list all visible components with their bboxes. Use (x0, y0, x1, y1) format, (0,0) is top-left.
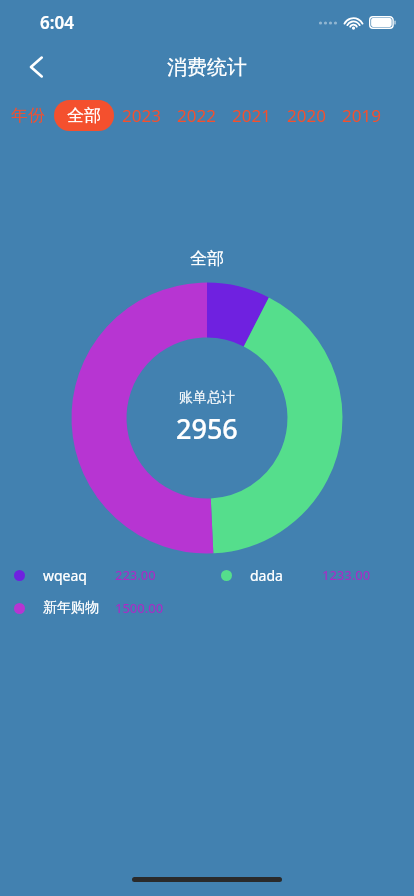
staticText: 2021 (232, 104, 271, 127)
button[interactable]: 2020 (279, 100, 334, 131)
staticText: 年份 (11, 105, 45, 126)
button[interactable]: 全部 (54, 100, 114, 131)
staticText: 223.00 (115, 566, 156, 584)
button[interactable]: 2021 (224, 100, 279, 131)
staticText: 2956 (176, 410, 238, 447)
staticText: 新年购物 (43, 599, 115, 617)
staticText: 1500.00 (115, 599, 164, 617)
staticText: 全部 (67, 105, 101, 126)
button[interactable]: 2023 (114, 100, 169, 131)
staticText: 2023 (122, 104, 161, 127)
staticText: 1233.00 (322, 566, 371, 584)
staticText: 消费统计 (167, 55, 247, 80)
staticText: 全部 (190, 248, 224, 269)
staticText: 账单总计 (179, 389, 235, 407)
button[interactable]: wqeaq (0, 564, 207, 586)
button[interactable]: 2022 (169, 100, 224, 131)
button[interactable]: dada (207, 564, 414, 586)
staticText: dada (250, 566, 322, 585)
staticText: wqeaq (43, 566, 115, 585)
button[interactable]: 2019 (334, 100, 389, 131)
staticText: 2022 (177, 104, 216, 127)
staticText: 2020 (287, 104, 326, 127)
staticText: 2019 (342, 104, 381, 127)
staticText: 6:04 (40, 11, 74, 34)
button[interactable]: 新年购物 (0, 597, 207, 619)
button[interactable]: Back (14, 45, 58, 89)
